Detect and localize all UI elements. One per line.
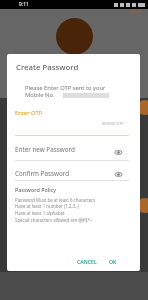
staticText: Please Enter OTP sent to your Mobile No. xyxy=(25,84,106,99)
button[interactable]: Show password xyxy=(113,147,123,157)
staticText: Enter new Password xyxy=(15,145,75,154)
staticText: 9:11 xyxy=(19,1,29,8)
button[interactable]: RESEND OTP xyxy=(101,120,125,127)
button[interactable]: SKIP xyxy=(130,7,143,16)
staticText: Create Password xyxy=(16,62,79,73)
staticText: CANCEL xyxy=(77,258,97,265)
button[interactable]: CANCEL xyxy=(73,255,101,268)
staticText: OK xyxy=(109,258,117,265)
staticText: Password Must be at least 6 characters H… xyxy=(15,197,96,224)
staticText: Confirm Password xyxy=(15,169,70,178)
staticText: Enter OTP xyxy=(15,109,43,117)
button[interactable]: Show password xyxy=(113,169,123,179)
button[interactable]: OK xyxy=(105,255,121,268)
staticText: Password Policy xyxy=(15,186,57,193)
